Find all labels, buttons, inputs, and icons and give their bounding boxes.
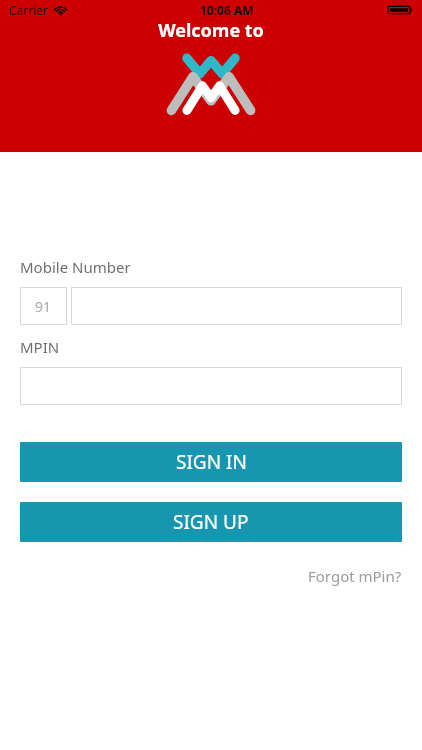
staticText: 91 (35, 297, 52, 316)
other: Battery full (388, 4, 413, 16)
button[interactable]: Forgot mPin? (308, 566, 402, 586)
button[interactable] (20, 367, 402, 405)
staticText: MPIN (20, 337, 60, 357)
button[interactable]: SIGN UP (20, 502, 402, 542)
button[interactable] (71, 287, 402, 325)
staticText: 10:06 AM (200, 2, 254, 18)
other: Wi-Fi (54, 4, 67, 17)
staticText: SIGN UP (173, 509, 249, 535)
staticText: Carrier (9, 2, 49, 18)
button[interactable]: 91 (20, 287, 67, 325)
staticText: Welcome to (158, 18, 264, 43)
button[interactable]: SIGN IN (20, 442, 402, 482)
staticText: Mobile Number (20, 257, 131, 277)
staticText: SIGN IN (176, 449, 247, 475)
staticText: Forgot mPin? (308, 566, 402, 586)
